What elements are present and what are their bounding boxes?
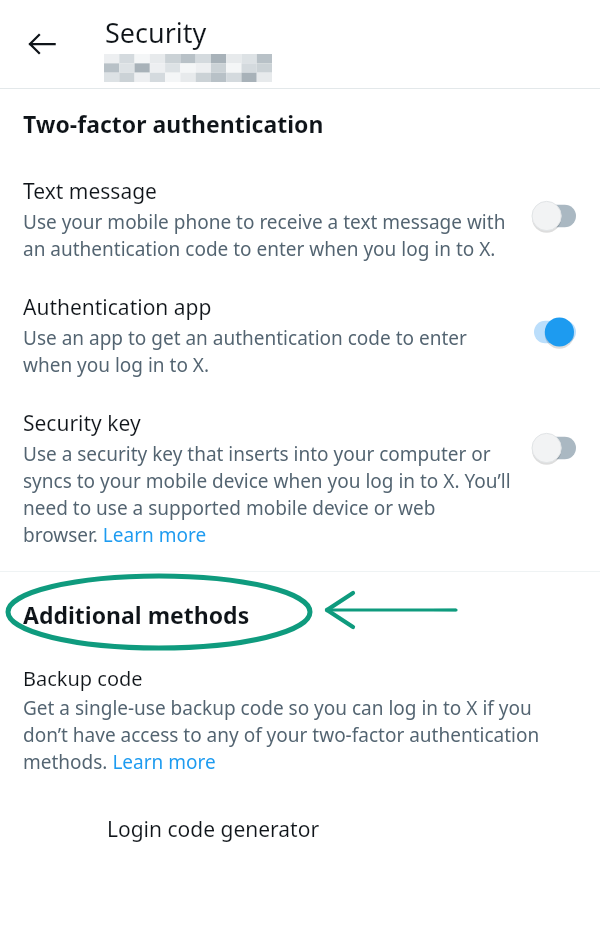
staticText: Two-factor authentication	[23, 108, 324, 139]
button[interactable]: Security key	[0, 409, 600, 548]
button[interactable]: Authentication app on	[526, 315, 582, 349]
button[interactable]: Backup code	[0, 665, 600, 775]
staticText: Security	[105, 14, 207, 51]
staticText: Use your mobile phone to receive a text …	[23, 209, 512, 262]
button[interactable]: Authentication app	[0, 293, 600, 378]
button[interactable]: Security key off	[526, 431, 582, 465]
staticText: Text message	[23, 177, 157, 206]
staticText: Get a single-use backup code so you can …	[23, 695, 570, 775]
staticText: Authentication app	[23, 293, 212, 322]
staticText: Use an app to get an authentication code…	[23, 325, 512, 378]
button[interactable]: Login code generator	[0, 813, 600, 854]
staticText: Security key	[23, 409, 141, 438]
staticText: Login code generator	[107, 815, 320, 844]
button[interactable]: Text message off	[526, 199, 582, 233]
staticText: Use a security key that inserts into you…	[23, 441, 512, 548]
staticText: Additional methods	[23, 599, 250, 630]
button[interactable]: Back	[18, 20, 66, 68]
staticText: Backup code	[23, 665, 143, 692]
button[interactable]: Text message	[0, 177, 600, 262]
